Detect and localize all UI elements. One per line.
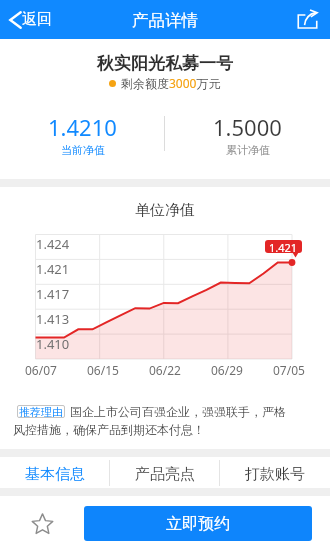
- staticText: 产品详情: [132, 10, 198, 31]
- staticText: 06/07: [25, 362, 57, 378]
- staticText: 1.421: [269, 240, 298, 253]
- staticText: 1.4210: [48, 112, 117, 142]
- staticText: 推荐理由: [19, 405, 63, 418]
- staticText: 1.417: [36, 285, 70, 303]
- staticText: 风控措施，确保产品到期还本付息！: [13, 422, 205, 437]
- staticText: 单位净值: [0, 201, 330, 220]
- staticText: 1.424: [36, 235, 70, 253]
- staticText: 06/29: [211, 362, 243, 378]
- staticText: 产品亮点: [135, 465, 195, 484]
- staticText: 当前净值: [61, 143, 105, 157]
- staticText: 07/05: [273, 362, 305, 378]
- button[interactable]: Favorite: [22, 503, 62, 543]
- button[interactable]: 立即预约: [84, 506, 312, 541]
- staticText: 国企上市公司百强企业，强强联手，严格: [70, 404, 286, 419]
- staticText: 06/15: [87, 362, 119, 378]
- staticText: 1.413: [36, 310, 70, 328]
- staticText: 返回: [22, 10, 52, 29]
- staticText: 立即预约: [166, 514, 230, 534]
- button[interactable]: Share: [294, 7, 321, 32]
- button[interactable]: 打款账号: [220, 457, 330, 488]
- staticText: 打款账号: [245, 465, 305, 484]
- button[interactable]: 返回: [5, 4, 58, 35]
- staticText: 剩余额度3000万元: [121, 75, 221, 91]
- button[interactable]: 基本信息: [0, 457, 110, 488]
- staticText: 基本信息: [25, 465, 85, 484]
- staticText: 1.421: [36, 260, 70, 278]
- staticText: 秋实阳光私募一号: [0, 53, 330, 74]
- button[interactable]: 产品亮点: [110, 457, 220, 488]
- staticText: 06/22: [149, 362, 181, 378]
- staticText: 1.5000: [213, 112, 282, 142]
- staticText: 1.410: [36, 335, 70, 353]
- staticText: 累计净值: [226, 143, 270, 157]
